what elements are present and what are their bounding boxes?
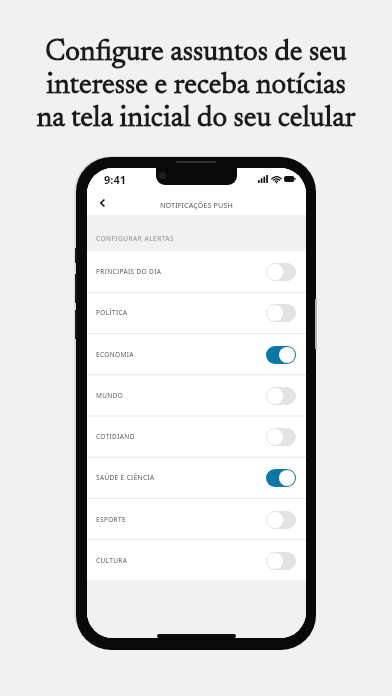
button[interactable]: ECONOMIA xyxy=(87,334,306,375)
staticText: CONFIGURAR ALERTAS xyxy=(96,234,175,243)
button[interactable] xyxy=(266,552,296,570)
staticText: MUNDO xyxy=(96,391,124,400)
staticText: NOTIFICAÇÕES PUSH xyxy=(160,200,233,210)
button[interactable]: MUNDO xyxy=(87,375,306,416)
staticText: COTIDIANO xyxy=(96,432,135,441)
button[interactable] xyxy=(266,511,296,529)
staticText: Configure assuntos de seu interesse e re… xyxy=(0,39,392,134)
staticText: PRINCIPAIS DO DIA xyxy=(96,267,162,276)
staticText: ESPORTE xyxy=(96,515,126,524)
button[interactable]: Voltar xyxy=(93,194,111,212)
button[interactable]: POLÍTICA xyxy=(87,292,306,333)
button[interactable] xyxy=(266,304,296,322)
button[interactable]: CULTURA xyxy=(87,540,306,581)
staticText: ECONOMIA xyxy=(96,350,134,359)
staticText: SAÚDE E CIÊNCIA xyxy=(96,473,155,482)
staticText: 9:41 xyxy=(104,172,126,187)
staticText: CULTURA xyxy=(96,556,128,565)
button[interactable]: SAÚDE E CIÊNCIA xyxy=(87,457,306,498)
button[interactable] xyxy=(266,428,296,446)
button[interactable] xyxy=(266,263,296,281)
button[interactable]: PRINCIPAIS DO DIA xyxy=(87,251,306,292)
button[interactable]: COTIDIANO xyxy=(87,416,306,457)
staticText: POLÍTICA xyxy=(96,308,128,317)
button[interactable]: ESPORTE xyxy=(87,499,306,540)
button[interactable] xyxy=(266,346,296,364)
button[interactable] xyxy=(266,469,296,487)
button[interactable] xyxy=(266,387,296,405)
